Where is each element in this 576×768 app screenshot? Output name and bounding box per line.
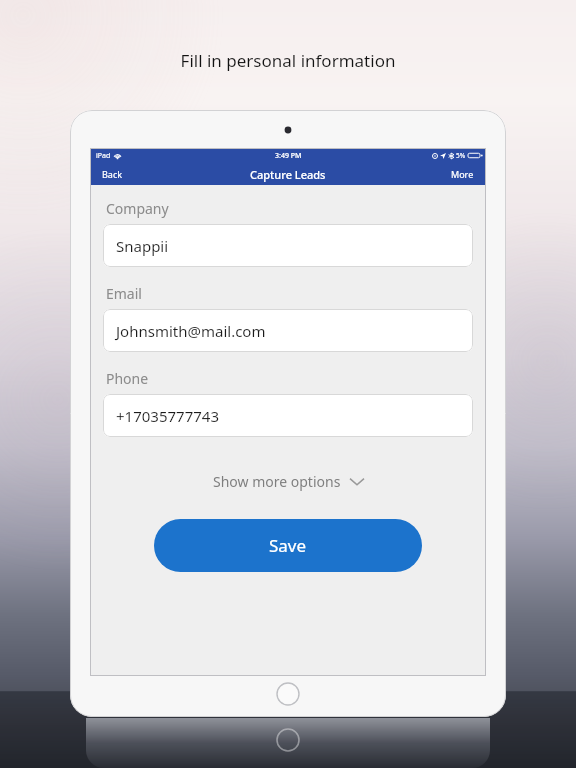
staticText: Phone xyxy=(106,369,149,388)
staticText: 3:49 PM xyxy=(275,151,302,161)
staticText: Show more options xyxy=(213,472,341,491)
button[interactable]: Save xyxy=(154,519,422,572)
staticText: +17035777743 xyxy=(116,406,219,426)
button[interactable]: Back xyxy=(90,165,135,183)
staticText: Save xyxy=(269,534,307,557)
staticText: Back xyxy=(102,168,123,180)
button[interactable]: +17035777743 xyxy=(103,394,473,437)
staticText: Email xyxy=(106,284,142,303)
staticText: Johnsmith@mail.com xyxy=(116,321,266,341)
staticText: Capture Leads xyxy=(250,167,326,182)
staticText: 5% xyxy=(456,151,466,160)
staticText: Snappii xyxy=(116,236,169,256)
staticText: Fill in personal information xyxy=(0,49,576,72)
staticText: iPad xyxy=(96,151,111,161)
button[interactable]: Show more options xyxy=(205,467,372,496)
button[interactable]: Snappii xyxy=(103,224,473,267)
button[interactable]: Home xyxy=(276,682,300,706)
button[interactable]: More xyxy=(439,165,486,183)
staticText: Company xyxy=(106,199,169,218)
button[interactable]: Johnsmith@mail.com xyxy=(103,309,473,352)
staticText: More xyxy=(451,168,474,180)
